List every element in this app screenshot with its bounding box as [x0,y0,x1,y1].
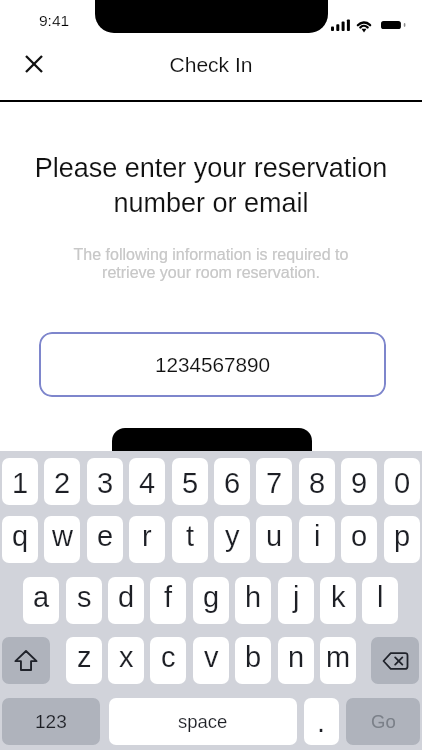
staticText: u [266,520,283,552]
staticText: 8 [309,467,326,499]
staticText: v [204,641,219,673]
button[interactable]: 1 [2,458,38,505]
staticText: l [377,581,384,613]
button[interactable]: u [256,516,292,563]
staticText: 9:41 [39,12,70,29]
staticText: 2 [54,467,71,499]
button[interactable]: e [87,516,123,563]
staticText: d [118,581,135,613]
staticText: 4 [139,467,156,499]
button[interactable]: j [278,577,314,624]
button[interactable]: k [320,577,356,624]
button[interactable]: s [66,577,102,624]
staticText: s [77,581,92,613]
button[interactable]: b [235,637,271,684]
button[interactable]: 8 [299,458,335,505]
button[interactable]: x [108,637,144,684]
button[interactable]: c [150,637,186,684]
button[interactable]: f [150,577,186,624]
staticText: space [178,711,228,732]
staticText: c [161,641,176,673]
button[interactable]: 6 [214,458,250,505]
staticText: p [394,520,411,552]
button[interactable]: 7 [256,458,292,505]
staticText: n [288,641,305,673]
button[interactable]: h [235,577,271,624]
staticText: 6 [224,467,241,499]
staticText: i [314,520,321,552]
button[interactable]: m [320,637,356,684]
button[interactable]: y [214,516,250,563]
button[interactable]: 1234567890 [39,332,386,397]
button[interactable]: r [129,516,165,563]
staticText: f [164,581,173,613]
staticText: b [245,641,262,673]
button[interactable]: Close [14,44,54,84]
staticText: y [225,520,240,552]
staticText: 7 [266,467,283,499]
staticText: w [52,520,73,552]
button[interactable]: o [341,516,377,563]
button[interactable]: 123 [2,698,100,745]
staticText: 1 [12,467,29,499]
staticText: The following information is required to… [0,246,422,282]
button[interactable]: i [299,516,335,563]
button[interactable]: 4 [129,458,165,505]
staticText: 0 [394,467,411,499]
button[interactable]: q [2,516,38,563]
staticText: k [331,581,346,613]
staticText: h [245,581,262,613]
staticText: j [293,581,300,613]
button[interactable]: g [193,577,229,624]
staticText: r [142,520,152,552]
staticText: 9 [351,467,368,499]
button[interactable]: l [362,577,398,624]
staticText: m [326,641,351,673]
staticText: t [186,520,195,552]
staticText: o [351,520,368,552]
button[interactable]: Shift [2,637,50,684]
button[interactable]: Go [346,698,420,745]
button[interactable]: 3 [87,458,123,505]
staticText: 3 [97,467,114,499]
button[interactable]: 5 [172,458,208,505]
staticText: Please enter your reservation number or … [0,153,422,218]
staticText: . [317,706,326,738]
staticText: a [33,581,50,613]
button[interactable]: a [23,577,59,624]
staticText: g [203,581,220,613]
button[interactable]: d [108,577,144,624]
button[interactable]: . [304,698,339,745]
staticText: Check In [0,53,422,76]
button[interactable]: 9 [341,458,377,505]
staticText: Go [371,711,396,732]
button[interactable]: v [193,637,229,684]
button[interactable]: Delete [371,637,419,684]
button[interactable]: p [384,516,420,563]
button[interactable]: space [109,698,297,745]
staticText: e [97,520,114,552]
staticText: 1234567890 [155,353,271,376]
staticText: x [119,641,134,673]
button[interactable]: 0 [384,458,420,505]
staticText: q [12,520,29,552]
staticText: z [77,641,92,673]
button[interactable]: n [278,637,314,684]
button[interactable]: 2 [44,458,80,505]
staticText: 5 [182,467,199,499]
staticText: 123 [35,711,67,732]
button[interactable]: z [66,637,102,684]
button[interactable]: w [44,516,80,563]
button[interactable]: t [172,516,208,563]
